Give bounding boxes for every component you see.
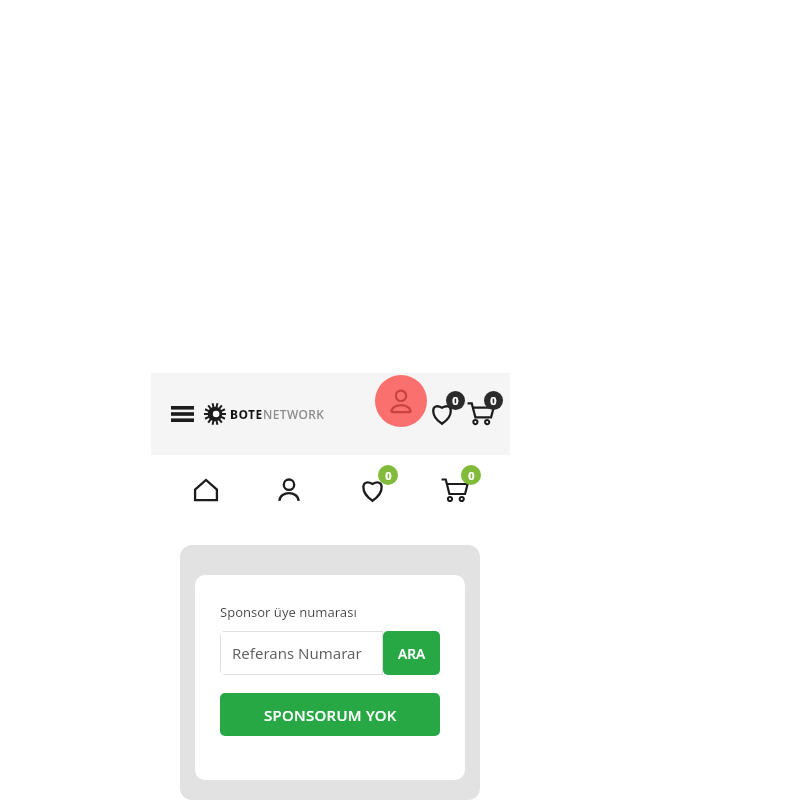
- staticText: 0: [490, 393, 497, 408]
- staticText: NETWORK: [263, 406, 325, 422]
- button[interactable]: Account: [375, 375, 427, 427]
- staticText: 0: [468, 468, 475, 483]
- button[interactable]: Profile: [251, 455, 327, 524]
- staticText: 0: [385, 468, 392, 483]
- staticText: SPONSORUM YOK: [264, 705, 397, 725]
- button[interactable]: Home: [168, 455, 244, 524]
- button[interactable]: Referans Numarar: [220, 631, 383, 675]
- button[interactable]: Menu: [163, 395, 201, 433]
- staticText: ARA: [398, 644, 426, 663]
- button[interactable]: Cart: [467, 391, 507, 431]
- button[interactable]: Favorites: [334, 455, 410, 524]
- button[interactable]: Favorites: [429, 391, 467, 431]
- button[interactable]: Cart: [417, 455, 493, 524]
- button[interactable]: ARA: [383, 631, 440, 675]
- button[interactable]: SPONSORUM YOK: [220, 693, 440, 736]
- staticText: Sponsor üye numarası: [220, 603, 357, 621]
- staticText: BOTE: [230, 406, 263, 422]
- staticText: 0: [452, 393, 459, 408]
- staticText: Referans Numarar: [232, 643, 362, 663]
- button[interactable]: BOTE: [204, 398, 325, 430]
